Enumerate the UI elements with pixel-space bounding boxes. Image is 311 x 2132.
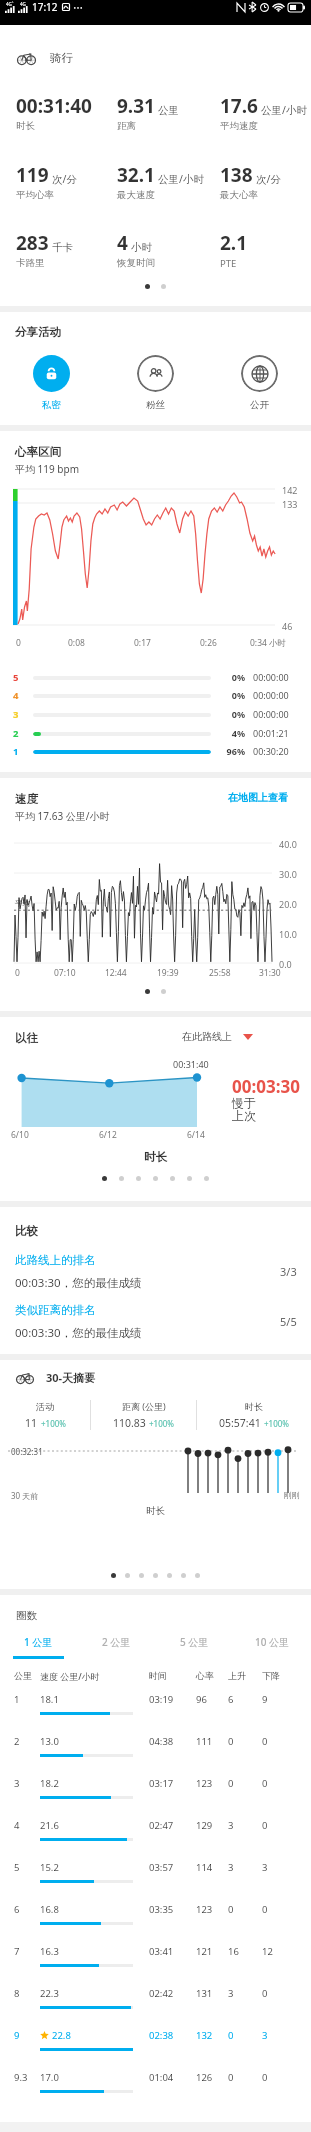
staticText: 00:00:00 [253, 671, 289, 683]
staticText: 02:42 [149, 1987, 174, 2000]
staticText: 3 [262, 1861, 268, 1874]
staticText: 30 天前 [11, 1490, 39, 1501]
staticText: 16.8 [40, 1903, 59, 1916]
staticText: 0:26 [200, 637, 217, 649]
button[interactable]: 在地图上查看 [228, 791, 288, 804]
staticText: 96% [218, 745, 245, 757]
staticText: 123 [196, 1903, 213, 1916]
staticText: 7 [14, 1945, 20, 1958]
staticText: 6/10 [11, 1129, 29, 1141]
button[interactable]: 2 [0, 1732, 311, 1774]
staticText: 129 [196, 1819, 213, 1832]
button[interactable]: 8 [0, 1984, 311, 2026]
staticText: 123 [196, 1777, 213, 1790]
staticText: 骑行 [50, 51, 73, 65]
button[interactable]: 1 公里 [0, 1635, 77, 1659]
staticText: 2 公里 [102, 1635, 131, 1649]
staticText: 2 [14, 1735, 20, 1748]
button[interactable]: 6 [0, 1900, 311, 1942]
button[interactable]: 骑行 [17, 43, 311, 73]
staticText: 4G [20, 1, 26, 7]
staticText: 121 [196, 1945, 213, 1958]
button[interactable]: 此路线上的排名 [0, 1251, 311, 1293]
staticText: 3/3 [280, 1264, 297, 1279]
staticText: 慢于 [232, 1095, 256, 1110]
staticText: 3 [228, 1987, 234, 2000]
staticText: 千卡 [52, 241, 73, 254]
button[interactable]: 公开 [207, 355, 311, 411]
staticText: 平均 17.63 公里/小时 [15, 809, 110, 823]
staticText: 以往 [15, 1031, 38, 1045]
button[interactable]: 粉丝 [103, 355, 207, 411]
staticText: 0 [262, 1777, 268, 1790]
staticText: +100% [264, 1418, 289, 1429]
staticText: 01:04 [149, 2071, 174, 2084]
staticText: 刚刚 [284, 1490, 300, 1500]
staticText: 00:00:00 [253, 689, 289, 701]
staticText: 公里 [14, 1670, 32, 1681]
button[interactable]: 在此路线上 [182, 1030, 253, 1043]
button[interactable]: 1 [0, 1690, 311, 1732]
staticText: 00:30:20 [253, 745, 289, 757]
staticText: 次/分 [52, 172, 77, 186]
staticText: 00:31:40 [16, 93, 92, 119]
staticText: 0 [228, 2071, 234, 2084]
staticText: 速度 公里/小时 [40, 1670, 100, 1682]
staticText: 96 [196, 1693, 207, 1706]
staticText: ⁺ [12, 1, 14, 6]
staticText: 9.3 [14, 2071, 28, 2084]
staticText: 5/5 [280, 1314, 297, 1329]
button[interactable]: 10 公里 [233, 1635, 311, 1659]
button[interactable]: 30-天摘要 [16, 1370, 96, 1385]
staticText: 比较 [15, 1224, 38, 1238]
staticText: 25:58 [209, 967, 231, 979]
button[interactable]: 9.3 [0, 2068, 311, 2110]
staticText: 30-天摘要 [46, 1370, 96, 1385]
staticText: 5 [13, 671, 19, 684]
button[interactable]: 类似距离的排名 [0, 1301, 311, 1343]
staticText: 133 [282, 498, 298, 510]
staticText: 00:00:00 [253, 708, 289, 720]
staticText: 12:44 [105, 967, 127, 979]
staticText: 3 [228, 1819, 234, 1832]
staticText: 0 [262, 1735, 268, 1748]
staticText: 03:57 [149, 1861, 174, 1874]
staticText: 0 [262, 1819, 268, 1832]
staticText: 13.0 [40, 1735, 59, 1748]
staticText: 0 [262, 1903, 268, 1916]
button[interactable]: 9 [0, 2026, 311, 2068]
staticText: 8 [14, 1987, 20, 2000]
staticText: 活动 [36, 1401, 54, 1412]
button[interactable]: 3 [0, 1774, 311, 1816]
staticText: 11 [25, 1416, 38, 1430]
staticText: 0% [218, 671, 245, 683]
staticText: 00:32:31 [11, 1446, 43, 1457]
button[interactable]: 私密 [0, 355, 103, 411]
button[interactable]: 2 公里 [77, 1635, 155, 1659]
button[interactable]: 5 [0, 1858, 311, 1900]
staticText: 平均心率 [16, 189, 54, 201]
staticText: 距离 (公里) [122, 1400, 166, 1412]
staticText: 0 [228, 1777, 234, 1790]
staticText: 6 [228, 1693, 234, 1706]
staticText: 02:38 [149, 2029, 174, 2042]
staticText: 283 [16, 230, 49, 256]
staticText: 3 [228, 1861, 234, 1874]
staticText: 心率 [196, 1670, 214, 1681]
staticText: 131 [196, 1987, 213, 2000]
staticText: 32.1 [117, 162, 155, 188]
staticText: 6/14 [187, 1129, 205, 1141]
button[interactable]: 7 [0, 1942, 311, 1984]
button[interactable]: 4 [0, 1816, 311, 1858]
staticText: 03:41 [149, 1945, 174, 1958]
staticText: +100% [149, 1418, 174, 1429]
staticText: +100% [41, 1418, 66, 1429]
staticText: 公开 [250, 399, 269, 411]
staticText: 110.83 [113, 1416, 146, 1430]
staticText: 22.8 [52, 2029, 71, 2042]
staticText: 2.1 [220, 230, 248, 256]
staticText: 1 [13, 745, 19, 758]
staticText: 00:31:40 [173, 1058, 209, 1070]
staticText: 最大速度 [117, 189, 155, 201]
button[interactable]: 5 公里 [155, 1635, 233, 1659]
